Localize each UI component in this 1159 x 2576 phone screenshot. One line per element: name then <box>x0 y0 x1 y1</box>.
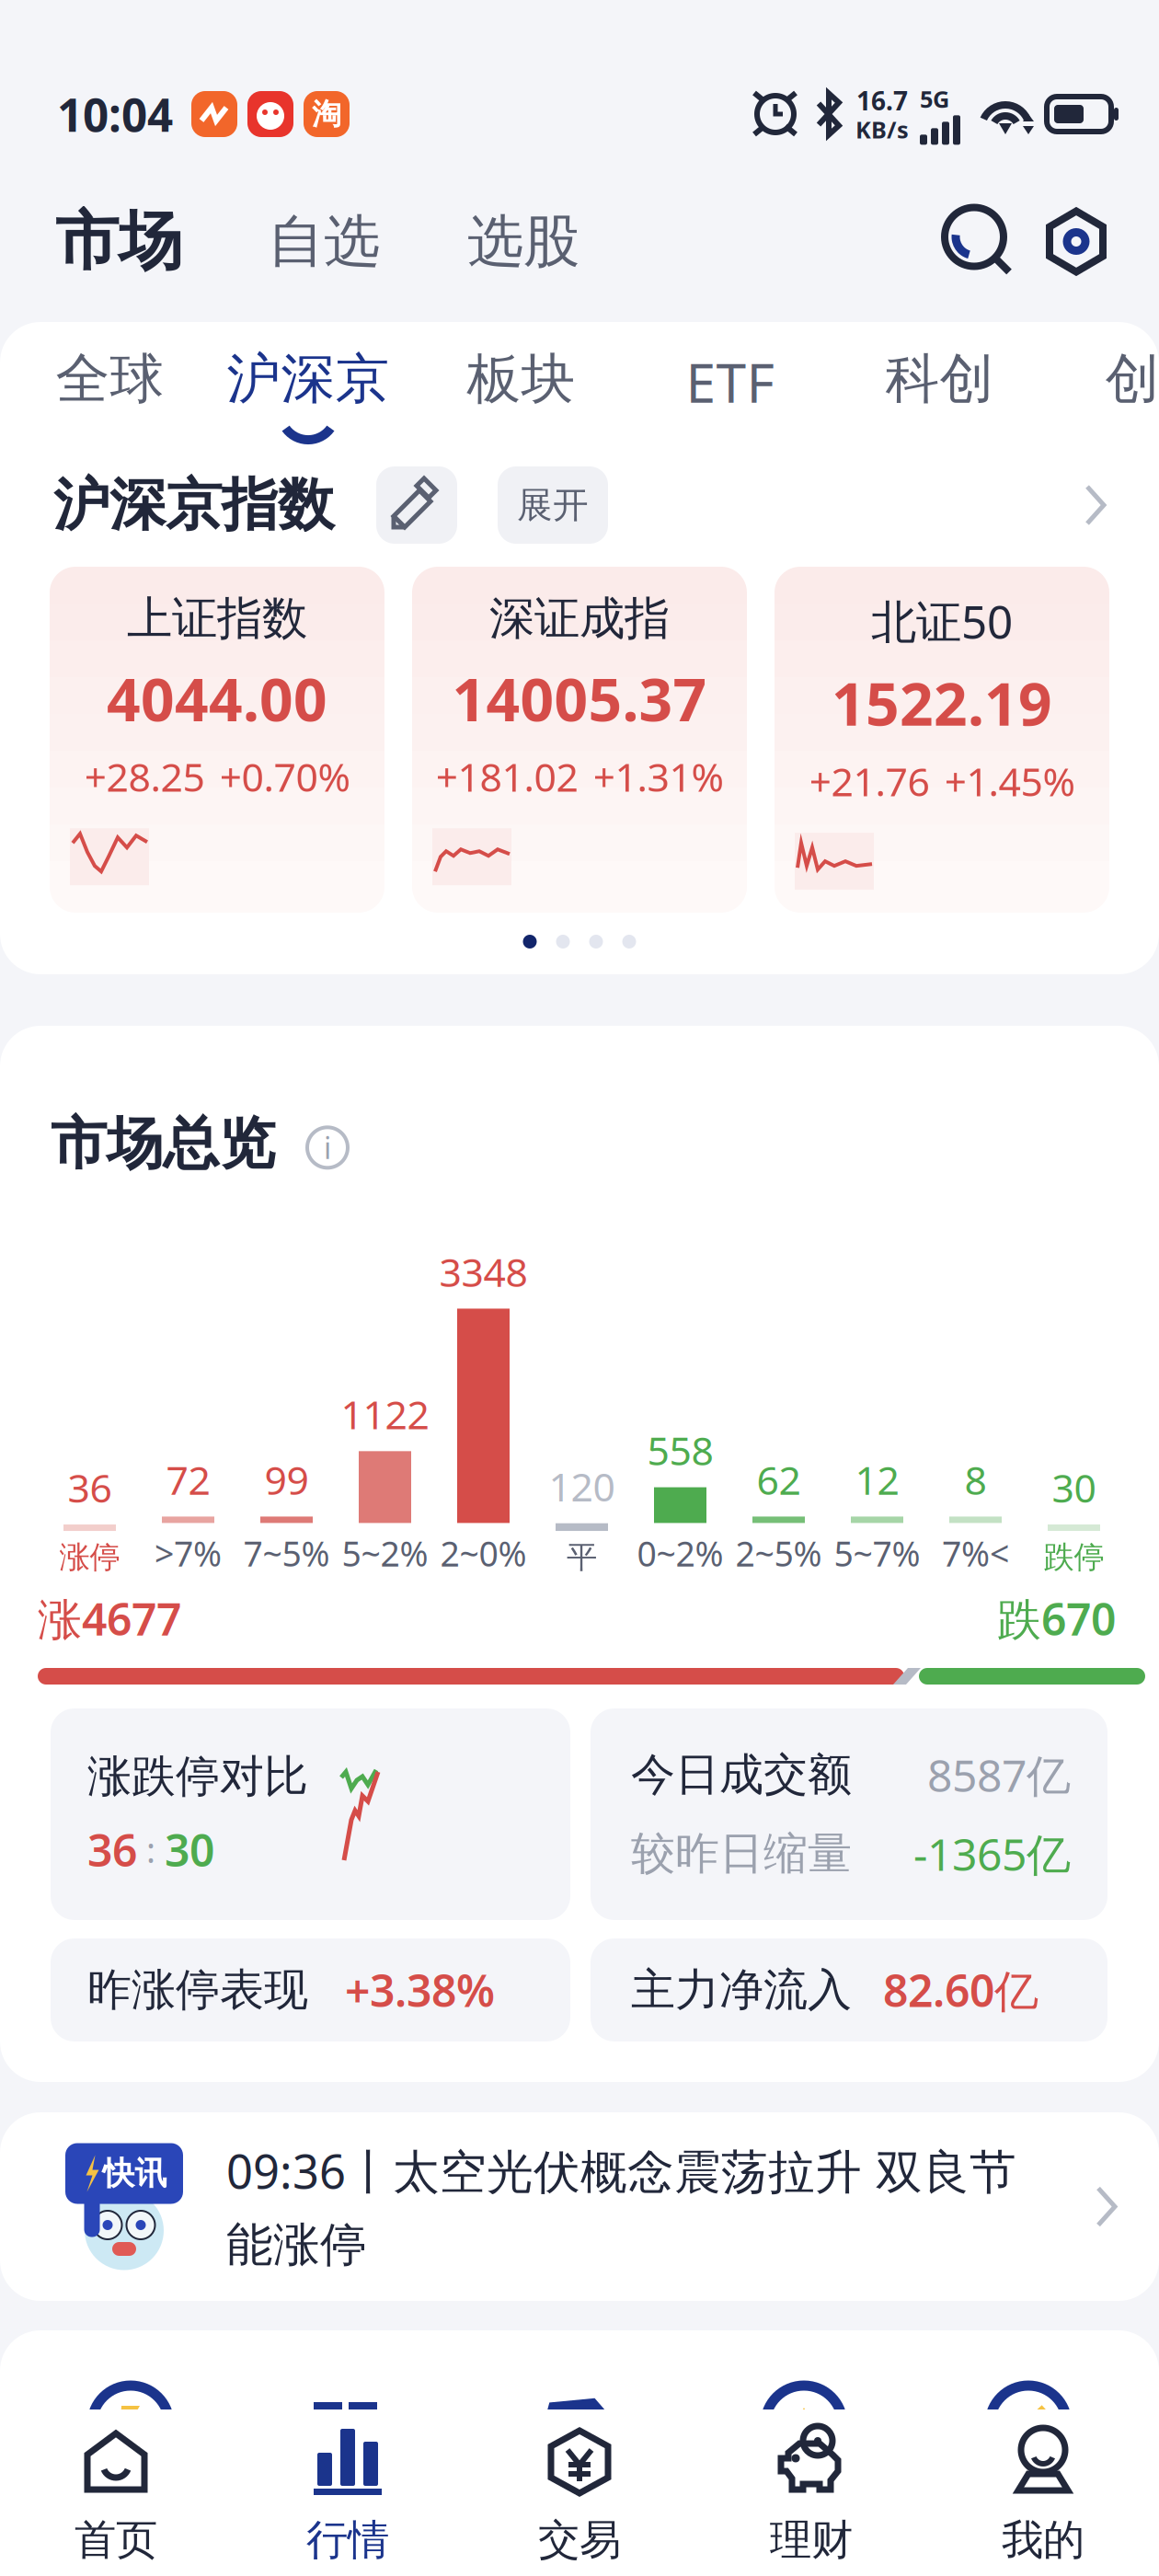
staticText: 选股 <box>467 207 579 276</box>
staticText: 5G <box>920 83 949 114</box>
button[interactable]: 全球 <box>56 322 164 451</box>
staticText: 全球 <box>56 346 164 412</box>
staticText: 自选 <box>268 207 380 276</box>
staticText: 理财 <box>770 2514 853 2566</box>
staticText: 72 <box>166 1453 210 1506</box>
staticText: 30 <box>1052 1461 1096 1513</box>
button[interactable]: Quick action <box>986 2384 1071 2465</box>
button[interactable]: Search <box>940 203 1017 280</box>
staticText: 3348 <box>439 1245 528 1298</box>
button[interactable]: Quick action <box>88 2384 173 2465</box>
staticText: 5~2% <box>342 1530 428 1576</box>
button[interactable]: 理财 <box>695 2409 927 2576</box>
button[interactable]: More indices <box>1084 484 1117 526</box>
staticText: 展开 <box>517 483 589 527</box>
staticText: 跌670 <box>997 1589 1116 1648</box>
staticText: 昨涨停表现 <box>87 1963 308 2017</box>
staticText: 跌停 <box>1044 1538 1104 1576</box>
button[interactable]: Quick action <box>537 2384 622 2465</box>
staticText: 今日成交额 <box>631 1748 852 1802</box>
button[interactable]: 选股 <box>380 207 579 276</box>
staticText: 涨停 <box>59 1538 120 1576</box>
staticText: +3.38% <box>345 1961 495 2019</box>
staticText: 科创 <box>885 346 994 412</box>
staticText: i <box>324 1128 331 1167</box>
staticText: 7~5% <box>243 1530 330 1576</box>
button[interactable]: 自选 <box>182 207 380 276</box>
staticText: 交易 <box>538 2514 621 2566</box>
button[interactable]: 今日成交额 <box>591 1708 1107 1920</box>
button[interactable]: 首页 <box>0 2409 232 2576</box>
staticText: 我的 <box>1002 2514 1084 2566</box>
staticText: 首页 <box>75 2514 157 2566</box>
button[interactable]: 交易 <box>464 2409 695 2576</box>
staticText: 8 <box>964 1453 987 1506</box>
staticText: : <box>146 1827 155 1872</box>
staticText: 120 <box>549 1460 615 1512</box>
staticText: 深证成指 <box>489 591 670 646</box>
staticText: 2~0% <box>440 1530 527 1576</box>
staticText: 2~5% <box>735 1530 822 1576</box>
button[interactable]: 昨涨停表现 <box>51 1938 570 2041</box>
staticText: +1.45% <box>944 755 1075 807</box>
staticText: 平 <box>567 1538 597 1576</box>
button[interactable]: 我的 <box>927 2409 1159 2576</box>
staticText: 快讯 <box>103 2154 167 2193</box>
staticText: -1365亿 <box>913 1824 1071 1883</box>
staticText: 沪深京指数 <box>53 470 334 540</box>
staticText: 36 <box>87 1820 137 1879</box>
staticText: 能涨停 <box>226 2216 367 2274</box>
staticText: +0.70% <box>219 750 350 803</box>
staticText: 1122 <box>341 1388 429 1440</box>
button[interactable]: Quick action <box>762 2384 846 2465</box>
button[interactable]: 行情 <box>232 2409 464 2576</box>
staticText: +1.31% <box>593 750 723 803</box>
button[interactable]: 沪深京 <box>164 322 390 451</box>
staticText: 淘 <box>312 96 341 132</box>
staticText: 板块 <box>467 346 575 412</box>
staticText: 82.60亿 <box>883 1961 1039 2019</box>
staticText: 沪深京 <box>227 346 390 412</box>
button[interactable]: 深证成指 <box>412 567 747 913</box>
staticText: KB/s <box>855 114 909 145</box>
button[interactable]: 上证指数 <box>50 567 384 913</box>
staticText: 市场 <box>55 202 182 281</box>
button[interactable]: 涨跌停对比 <box>51 1708 570 1920</box>
staticText: 主力净流入 <box>631 1963 852 2017</box>
staticText: 62 <box>757 1453 801 1506</box>
button[interactable]: Edit <box>334 466 457 544</box>
staticText: 北证50 <box>871 591 1013 651</box>
button[interactable]: ETF <box>575 322 774 451</box>
staticText: 8587亿 <box>927 1746 1071 1804</box>
button[interactable]: 市场 <box>55 202 182 281</box>
staticText: 30 <box>165 1820 214 1879</box>
staticText: 1522.19 <box>832 664 1052 742</box>
staticText: 行情 <box>306 2514 389 2566</box>
staticText: 创 <box>1105 346 1159 412</box>
staticText: 涨4677 <box>38 1589 181 1648</box>
staticText: ETF <box>686 346 774 418</box>
staticText: 5~7% <box>834 1530 920 1576</box>
button[interactable]: 科创 <box>774 322 994 451</box>
button[interactable]: 板块 <box>390 322 575 451</box>
staticText: 0~2% <box>637 1530 723 1576</box>
staticText: 99 <box>264 1453 309 1506</box>
staticText: 上证指数 <box>127 591 307 646</box>
staticText: 16.7 <box>856 83 908 118</box>
button[interactable]: 北证50 <box>775 567 1109 913</box>
staticText: 4044.00 <box>107 659 327 737</box>
staticText: 10:04 <box>57 84 173 144</box>
staticText: 558 <box>647 1424 713 1476</box>
staticText: +21.76 <box>809 755 929 807</box>
button[interactable]: 主力净流入 <box>591 1938 1107 2041</box>
button[interactable]: 展开 <box>457 466 608 544</box>
button[interactable]: Settings <box>1017 203 1113 280</box>
button[interactable]: 快讯 <box>0 2112 1159 2301</box>
staticText: +181.02 <box>436 750 578 803</box>
staticText: 36 <box>68 1461 112 1513</box>
staticText: 14005.37 <box>452 659 707 737</box>
button[interactable]: 创 <box>994 322 1159 451</box>
button[interactable]: Quick action <box>313 2384 397 2465</box>
staticText: 7%< <box>942 1530 1009 1576</box>
staticText: 较昨日缩量 <box>631 1827 852 1881</box>
